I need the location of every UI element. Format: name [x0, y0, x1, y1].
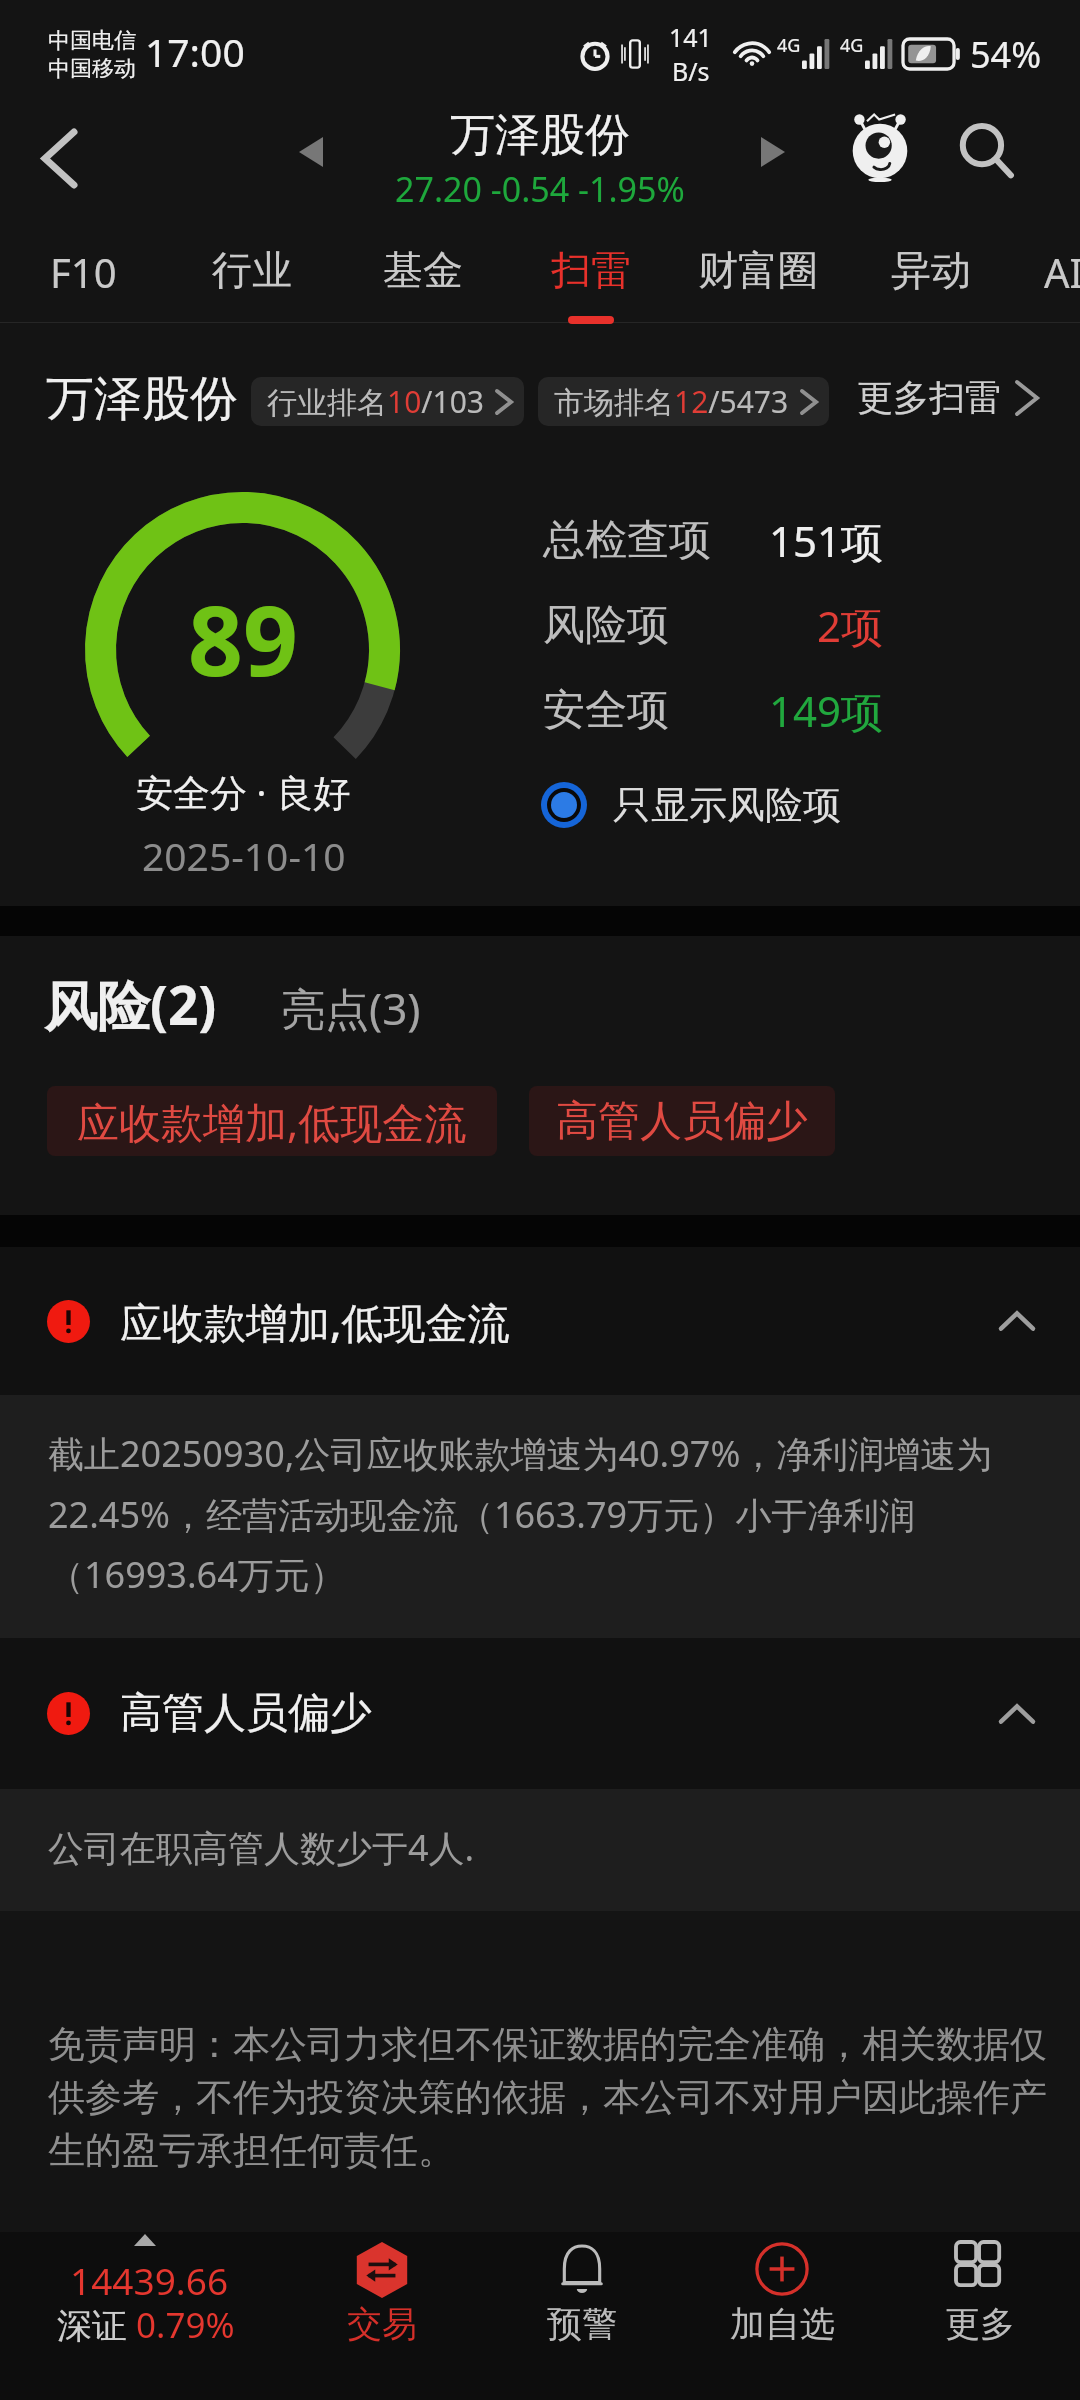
button[interactable]: 应收款增加,低现金流: [47, 1086, 497, 1156]
staticText: 17:00: [145, 25, 245, 78]
staticText: 高管人员偏少: [120, 1687, 372, 1740]
button[interactable]: 异动: [867, 225, 995, 335]
staticText: 151项: [768, 512, 883, 569]
staticText: 中国移动: [48, 55, 136, 83]
button[interactable]: 扫雷: [527, 225, 655, 335]
staticText: 行业排名10/103: [267, 381, 484, 422]
staticText: 预警: [547, 2302, 617, 2346]
staticText: 141: [669, 20, 712, 54]
staticText: 27.20 -0.54 -1.95%: [395, 166, 685, 212]
staticText: 扫雷: [551, 245, 631, 295]
staticText: 加自选: [730, 2302, 835, 2346]
staticText: 总检查项: [543, 514, 711, 567]
button[interactable]: 行业: [188, 225, 316, 335]
button[interactable]: 搜索: [921, 88, 1051, 213]
staticText: B/s: [672, 54, 710, 88]
button[interactable]: 更多: [880, 2232, 1080, 2400]
staticText: 深证 0.79%: [57, 2301, 235, 2349]
staticText: 风险(2): [44, 968, 217, 1040]
staticText: 异动: [891, 245, 971, 295]
staticText: 只显示风险项: [613, 781, 841, 829]
staticText: 安全项: [543, 684, 669, 737]
staticText: 4G: [777, 33, 801, 58]
staticText: 交易: [347, 2302, 417, 2346]
button[interactable]: 交易: [282, 2232, 482, 2400]
button[interactable]: 风险(2): [44, 968, 217, 1040]
staticText: 4G: [840, 33, 864, 58]
staticText: 高管人员偏少: [556, 1095, 808, 1148]
button[interactable]: 财富圈: [674, 225, 842, 335]
staticText: 市场排名12/5473: [554, 381, 789, 422]
button[interactable]: 亮点(3): [281, 978, 421, 1038]
staticText: 54%: [970, 30, 1042, 79]
staticText: 应收款增加,低现金流: [120, 1293, 510, 1350]
staticText: 公司在职高管人数少于4人.: [48, 1823, 475, 1872]
staticText: 89: [188, 573, 298, 704]
button[interactable]: 上一只股票: [278, 119, 344, 185]
button[interactable]: F10: [26, 225, 141, 335]
button[interactable]: 只显示风险项: [541, 781, 841, 829]
staticText: 2025-10-10: [142, 829, 346, 882]
staticText: 行业: [212, 245, 292, 295]
staticText: 14439.66: [70, 2255, 229, 2305]
button[interactable]: 智能助手: [820, 83, 940, 208]
staticText: 截止20250930,公司应收账款增速为40.97%，净利润增速为22.45%，…: [48, 1429, 1060, 1598]
staticText: 更多: [945, 2302, 1015, 2346]
staticText: 应收款增加,低现金流: [77, 1093, 467, 1150]
button[interactable]: 应收款增加,低现金流: [0, 1247, 1080, 1395]
button[interactable]: AI: [1020, 225, 1080, 335]
staticText: 更多扫雷: [857, 375, 1001, 420]
button[interactable]: 高管人员偏少: [529, 1086, 835, 1156]
button[interactable]: 加自选: [682, 2232, 882, 2400]
staticText: 万泽股份: [46, 369, 238, 429]
button[interactable]: 14439.66: [0, 2232, 282, 2400]
staticText: 149项: [768, 682, 883, 739]
button[interactable]: 下一只股票: [740, 119, 806, 185]
button[interactable]: 行业排名10/103: [251, 377, 524, 426]
staticText: F10: [50, 245, 117, 299]
staticText: 2项: [816, 597, 883, 654]
staticText: 万泽股份: [450, 107, 630, 164]
staticText: 安全分 · 良好: [136, 766, 351, 817]
button[interactable]: 预警: [482, 2232, 682, 2400]
staticText: 亮点(3): [281, 978, 421, 1038]
button[interactable]: 返回: [4, 96, 114, 221]
staticText: 财富圈: [698, 245, 818, 295]
button[interactable]: 市场排名12/5473: [538, 377, 829, 426]
staticText: 风险项: [543, 599, 669, 652]
staticText: 中国电信: [48, 27, 136, 55]
staticText: 免责声明：本公司力求但不保证数据的完全准确，相关数据仅供参考，不作为投资决策的依…: [48, 2021, 1060, 2174]
staticText: 基金: [383, 245, 463, 295]
button[interactable]: 更多扫雷: [851, 375, 1043, 420]
button[interactable]: 高管人员偏少: [0, 1638, 1080, 1789]
staticText: AI: [1044, 245, 1080, 299]
button[interactable]: 基金: [359, 225, 487, 335]
